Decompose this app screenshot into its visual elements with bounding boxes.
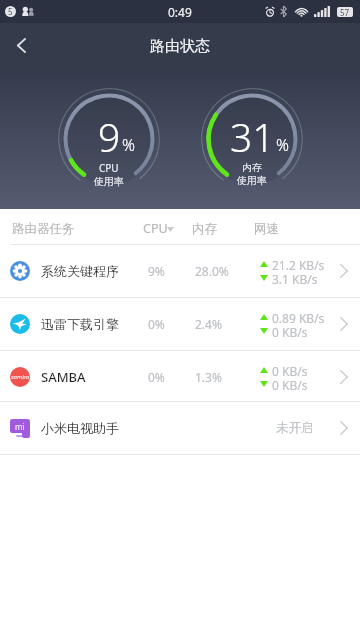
staticText: 1.3%	[195, 369, 222, 385]
staticText: 网速	[254, 221, 279, 237]
staticText: SAMBA	[41, 368, 86, 386]
staticText: 路由状态	[150, 37, 210, 56]
staticText: 9%	[148, 263, 165, 279]
button[interactable]: mi	[0, 402, 360, 454]
staticText: 迅雷下载引擎	[41, 316, 119, 332]
staticText: 0%	[148, 369, 165, 385]
button[interactable]: samba	[0, 351, 360, 402]
button[interactable]: 迅雷下载引擎	[0, 298, 360, 350]
staticText: 57	[340, 7, 350, 17]
staticText: 小米电视助手	[41, 420, 119, 436]
staticText: 路由器任务	[12, 221, 75, 237]
button[interactable]: Back	[3, 23, 40, 67]
staticText: 未开启	[276, 420, 314, 436]
staticText: 9	[98, 110, 121, 163]
staticText: 28.0%	[195, 263, 229, 279]
staticText: 系统关键程序	[41, 263, 119, 279]
staticText: 内存	[192, 221, 217, 237]
staticText: 0 KB/s	[272, 377, 308, 393]
staticText: 0 KB/s	[272, 324, 308, 340]
staticText: 0.89 KB/s	[272, 310, 325, 326]
staticText: CPU	[143, 220, 168, 237]
staticText: mi	[15, 421, 25, 432]
staticText: 0%	[148, 316, 165, 332]
staticText: 使用率	[237, 174, 267, 187]
staticText: 2.4%	[195, 316, 222, 332]
staticText: 内存	[242, 161, 262, 174]
staticText: CPU	[99, 161, 119, 175]
staticText: 3.1 KB/s	[272, 271, 318, 287]
button[interactable]: 系统关键程序	[0, 245, 360, 296]
staticText: 0:49	[168, 4, 192, 20]
staticText: 0 KB/s	[272, 363, 308, 379]
staticText: 21.2 KB/s	[272, 257, 325, 273]
staticText: 5	[8, 6, 13, 17]
staticText: 31	[230, 110, 275, 163]
staticText: 使用率	[94, 175, 124, 188]
staticText: samba	[11, 373, 30, 381]
